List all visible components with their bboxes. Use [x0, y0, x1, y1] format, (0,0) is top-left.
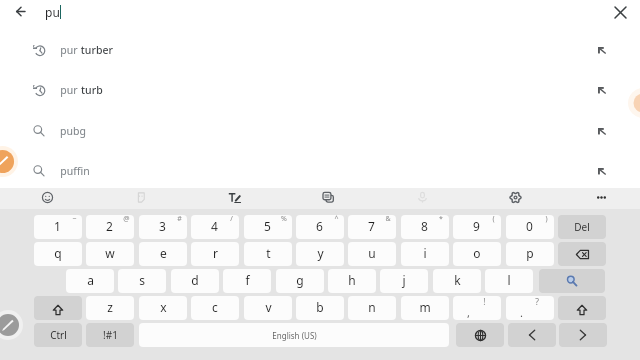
staticText: & — [385, 215, 391, 224]
staticText: p — [526, 245, 534, 261]
staticText: 8 — [421, 218, 428, 234]
staticText: j — [402, 272, 406, 288]
staticText: r — [213, 245, 218, 261]
button[interactable]: Translate — [314, 188, 342, 209]
button[interactable]: d — [171, 269, 219, 293]
button[interactable]: z — [86, 296, 134, 320]
button[interactable]: l — [485, 269, 533, 293]
button[interactable]: a — [66, 269, 114, 293]
button[interactable]: o — [453, 242, 501, 266]
button[interactable]: Edit note — [0, 310, 23, 340]
staticText: i — [423, 245, 427, 261]
staticText: c — [212, 299, 218, 315]
staticText: ( — [492, 215, 495, 224]
button[interactable]: Settings — [501, 188, 529, 209]
button[interactable]: r — [191, 242, 239, 266]
staticText: k — [454, 272, 461, 288]
button[interactable]: 8 — [401, 215, 449, 239]
button[interactable]: Search — [539, 269, 605, 293]
button[interactable]: g — [276, 269, 324, 293]
button[interactable]: 9 — [453, 215, 501, 239]
button[interactable]: Voice input — [408, 188, 436, 209]
staticText: y — [317, 245, 324, 261]
staticText: g — [296, 272, 304, 288]
button[interactable]: c — [191, 296, 239, 320]
button[interactable]: Move cursor right — [559, 323, 607, 347]
button[interactable]: 4 — [191, 215, 239, 239]
button[interactable]: Use suggestion pur turber — [594, 42, 610, 58]
button[interactable]: pur — [0, 70, 640, 110]
staticText: t — [266, 245, 271, 261]
button[interactable]: Use suggestion puffin — [594, 163, 610, 179]
staticText: 2 — [106, 218, 113, 234]
button[interactable]: Shift — [34, 296, 82, 320]
button[interactable]: , — [453, 296, 501, 320]
button[interactable]: 1 — [34, 215, 82, 239]
button[interactable]: p — [506, 242, 554, 266]
button[interactable]: i — [401, 242, 449, 266]
staticText: m — [419, 299, 431, 315]
staticText: English (US) — [272, 330, 317, 341]
staticText: pur — [60, 83, 78, 97]
button[interactable]: Ctrl — [34, 323, 82, 347]
button[interactable]: puffin — [0, 151, 640, 191]
button[interactable]: v — [244, 296, 292, 320]
staticText: b — [316, 299, 324, 315]
button[interactable]: x — [139, 296, 187, 320]
button[interactable]: Shift — [558, 296, 606, 320]
button[interactable]: j — [380, 269, 428, 293]
button[interactable]: Symbols — [86, 323, 134, 347]
staticText: h — [348, 272, 356, 288]
button[interactable]: t — [244, 242, 292, 266]
staticText: s — [139, 272, 145, 288]
button[interactable]: More options — [587, 188, 615, 209]
button[interactable]: 5 — [244, 215, 292, 239]
button[interactable]: English (US) — [139, 323, 449, 347]
staticText: % — [281, 215, 287, 224]
button[interactable]: Edit note — [0, 146, 18, 177]
button[interactable]: 6 — [296, 215, 344, 239]
button[interactable]: pur — [0, 30, 640, 70]
button[interactable]: Clear search — [608, 0, 632, 24]
button[interactable]: w — [86, 242, 134, 266]
button[interactable]: Use suggestion pur turb — [594, 82, 610, 98]
staticText: 5 — [264, 218, 271, 234]
button[interactable]: f — [223, 269, 271, 293]
button[interactable]: Emoji — [33, 188, 61, 209]
staticText: 0 — [526, 218, 533, 234]
staticText: 9 — [473, 218, 480, 234]
button[interactable]: b — [296, 296, 344, 320]
button[interactable]: m — [401, 296, 449, 320]
button[interactable]: k — [433, 269, 481, 293]
staticText: / — [230, 215, 233, 224]
button[interactable]: Backspace — [558, 242, 606, 266]
button[interactable]: y — [296, 242, 344, 266]
button[interactable]: 0 — [506, 215, 554, 239]
button[interactable]: e — [139, 242, 187, 266]
button[interactable]: . — [506, 296, 554, 320]
button[interactable]: n — [348, 296, 396, 320]
staticText: ? — [535, 296, 539, 308]
button[interactable]: s — [118, 269, 166, 293]
button[interactable]: 2 — [86, 215, 134, 239]
button[interactable]: u — [348, 242, 396, 266]
button[interactable]: Move cursor left — [508, 323, 556, 347]
button[interactable]: 7 — [348, 215, 396, 239]
staticText: f — [245, 272, 250, 288]
button[interactable]: Handwriting — [220, 188, 248, 209]
button[interactable]: Assistant bubble — [620, 83, 640, 119]
staticText: q — [54, 245, 62, 261]
button[interactable]: Change keyboard language — [456, 323, 504, 347]
button[interactable]: h — [328, 269, 376, 293]
button[interactable]: Use suggestion pubg — [594, 123, 610, 139]
staticText: n — [368, 299, 376, 315]
staticText: 4 — [211, 218, 218, 234]
staticText: v — [265, 299, 272, 315]
button[interactable]: Del — [558, 215, 606, 239]
button[interactable]: Stickers — [126, 188, 154, 209]
staticText: ) — [545, 215, 548, 224]
button[interactable]: pubg — [0, 111, 640, 151]
button[interactable]: Back — [9, 0, 32, 23]
button[interactable]: q — [34, 242, 82, 266]
button[interactable]: 3 — [139, 215, 187, 239]
